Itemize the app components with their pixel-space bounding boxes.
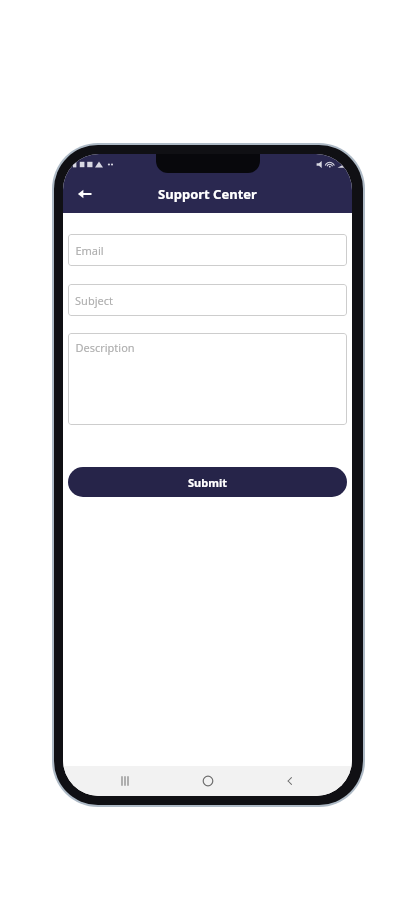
- button[interactable]: Submit: [68, 467, 347, 497]
- staticText: Subject: [75, 293, 113, 308]
- button[interactable]: Back: [269, 766, 311, 796]
- button[interactable]: Back: [67, 177, 101, 211]
- button[interactable]: Home: [187, 766, 229, 796]
- button[interactable]: Email: [68, 234, 347, 266]
- button[interactable]: Recents: [104, 766, 146, 796]
- staticText: Email: [75, 243, 104, 258]
- button[interactable]: Subject: [68, 284, 347, 316]
- button[interactable]: Description: [68, 333, 347, 425]
- staticText: Submit: [188, 475, 227, 490]
- staticText: Support Center: [158, 185, 257, 203]
- staticText: Description: [75, 340, 135, 355]
